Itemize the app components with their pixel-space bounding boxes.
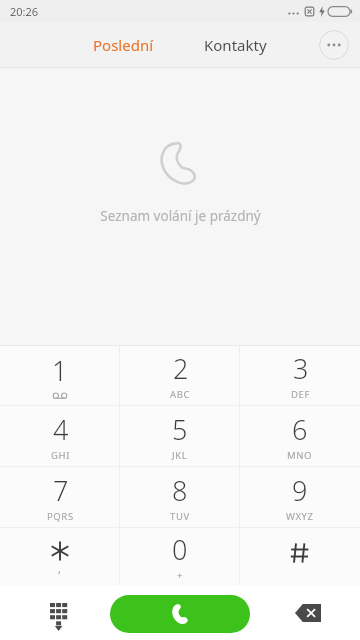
button[interactable]: Poslední — [81, 27, 166, 63]
button[interactable]: 2 — [120, 345, 240, 405]
button[interactable]: More options — [319, 30, 349, 60]
button[interactable]: Kontakty — [192, 27, 279, 63]
staticText: 9 — [292, 472, 308, 509]
staticText: 8 — [172, 472, 188, 509]
staticText: + — [177, 569, 184, 582]
button[interactable] — [240, 528, 360, 585]
button[interactable]: 7 — [0, 467, 120, 527]
button[interactable]: Delete — [290, 595, 326, 631]
staticText: TUV — [170, 510, 190, 523]
button[interactable]: Hide keypad — [42, 596, 76, 630]
staticText: , — [58, 561, 62, 576]
staticText: 20:26 — [10, 4, 39, 19]
staticText: MNO — [287, 449, 313, 462]
staticText: Poslední — [93, 35, 154, 55]
button[interactable]: 3 — [240, 345, 360, 405]
staticText: 4 — [53, 411, 69, 448]
staticText: GHI — [51, 449, 70, 462]
button[interactable]: , — [0, 528, 120, 585]
button[interactable]: 9 — [240, 467, 360, 527]
staticText: Kontakty — [204, 35, 267, 55]
button[interactable]: Call — [110, 595, 250, 633]
staticText: PQRS — [47, 510, 74, 523]
button[interactable]: 6 — [240, 406, 360, 466]
staticText: 2 — [173, 350, 189, 387]
staticText: 6 — [292, 411, 308, 448]
button[interactable]: 1 — [0, 345, 120, 405]
staticText: ABC — [170, 388, 191, 401]
staticText: 3 — [293, 350, 309, 387]
staticText: 1 — [52, 352, 68, 389]
staticText: JKL — [172, 449, 188, 462]
staticText: DEF — [291, 388, 310, 401]
staticText: Seznam volání je prázdný — [100, 207, 261, 225]
button[interactable]: 4 — [0, 406, 120, 466]
staticText: WXYZ — [286, 510, 314, 523]
staticText: 0 — [172, 531, 188, 568]
button[interactable]: 8 — [120, 467, 240, 527]
button[interactable]: 5 — [120, 406, 240, 466]
staticText: 7 — [53, 472, 69, 509]
staticText: 5 — [172, 411, 188, 448]
button[interactable]: 0 — [120, 528, 240, 585]
